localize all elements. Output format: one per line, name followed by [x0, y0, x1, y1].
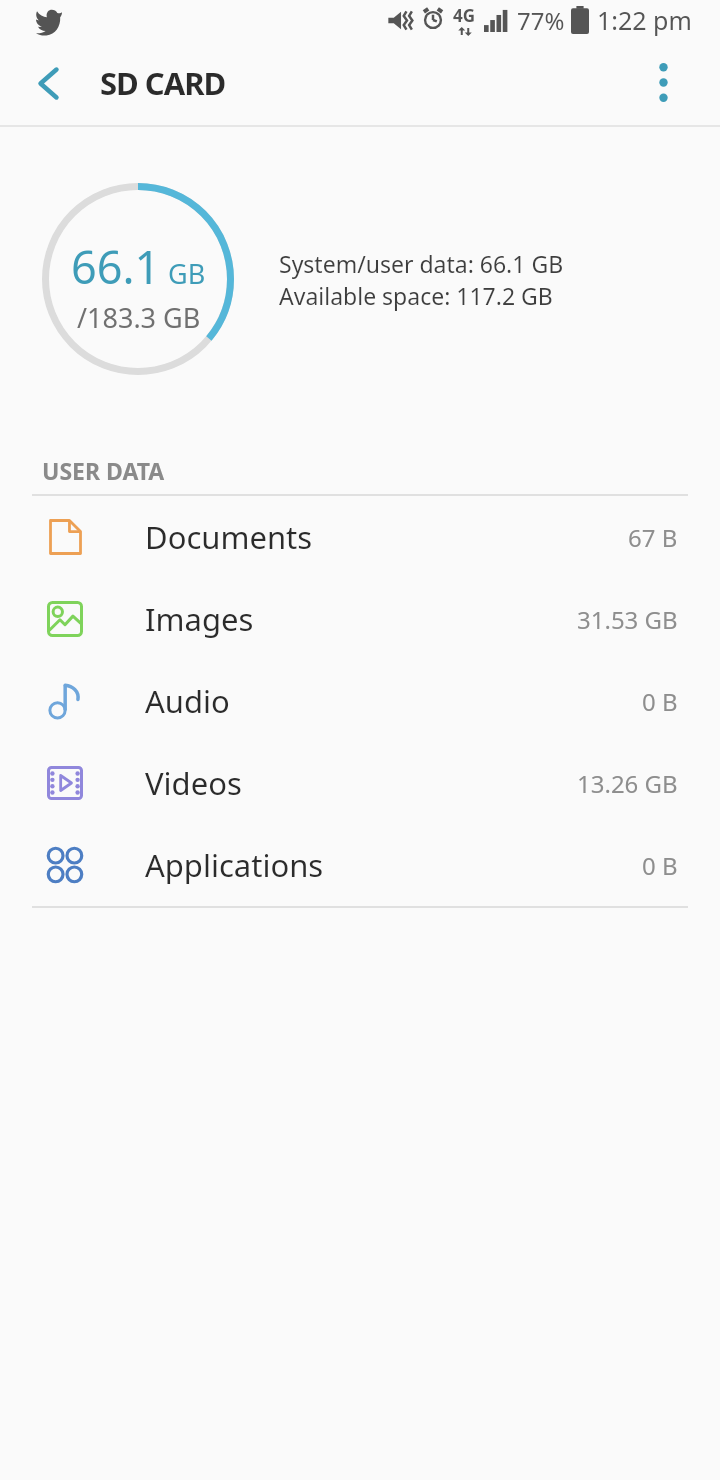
staticText: Videos: [145, 762, 242, 804]
staticText: Audio: [145, 680, 230, 722]
button[interactable]: Documents: [0, 496, 720, 578]
staticText: Applications: [145, 844, 324, 886]
staticText: Available space: 117.2 GB: [279, 280, 553, 311]
button[interactable]: [627, 40, 699, 125]
staticText: 13.26 GB: [577, 767, 678, 800]
button[interactable]: Audio: [0, 660, 720, 742]
staticText: 4G: [453, 4, 476, 27]
staticText: 66.1: [71, 236, 161, 297]
button[interactable]: Applications: [0, 824, 720, 906]
staticText: 67 B: [628, 521, 678, 554]
staticText: System/user data: 66.1 GB: [279, 248, 564, 279]
staticText: USER DATA: [42, 455, 165, 486]
button[interactable]: Videos: [0, 742, 720, 824]
staticText: 0 B: [642, 849, 678, 882]
staticText: 77%: [517, 4, 565, 37]
button[interactable]: Images: [0, 578, 720, 660]
staticText: GB: [161, 255, 206, 292]
staticText: 1:22 pm: [597, 3, 692, 37]
staticText: /183.3 GB: [77, 299, 201, 336]
staticText: 31.53 GB: [577, 603, 678, 636]
staticText: Images: [145, 598, 254, 640]
staticText: 0 B: [642, 685, 678, 718]
button[interactable]: [0, 47, 72, 119]
staticText: Documents: [145, 516, 313, 558]
staticText: SD CARD: [100, 62, 226, 104]
